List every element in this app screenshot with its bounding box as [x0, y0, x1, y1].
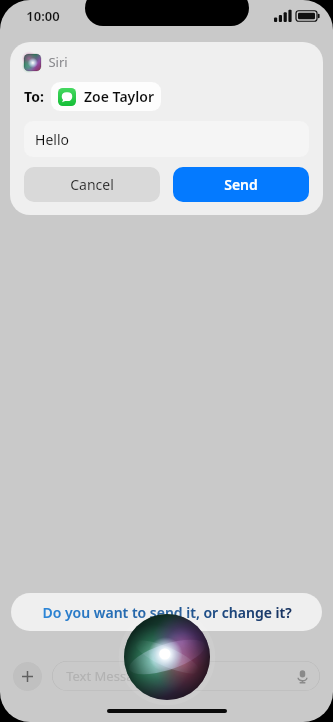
staticText: Text Message	[66, 667, 149, 685]
button[interactable]: Send	[173, 167, 309, 202]
button[interactable]: Zoe Taylor	[51, 82, 161, 111]
button[interactable]: Dictate	[293, 667, 311, 685]
staticText: Hello	[35, 130, 69, 149]
button[interactable]: Hello	[24, 121, 309, 157]
staticText: Zoe Taylor	[84, 87, 154, 106]
button[interactable]: Add attachment	[13, 662, 42, 691]
button[interactable]: Text Message	[52, 661, 320, 691]
staticText: Cancel	[70, 175, 114, 194]
staticText: Siri	[48, 53, 68, 71]
staticText: 10:00	[26, 7, 60, 25]
other: Siri	[124, 614, 210, 700]
staticText: Do you want to send it, or change it?	[42, 603, 292, 622]
staticText: Send	[224, 175, 258, 194]
button[interactable]: Do you want to send it, or change it?	[11, 593, 322, 631]
staticText: To:	[24, 87, 44, 106]
button[interactable]: Cancel	[24, 167, 160, 202]
